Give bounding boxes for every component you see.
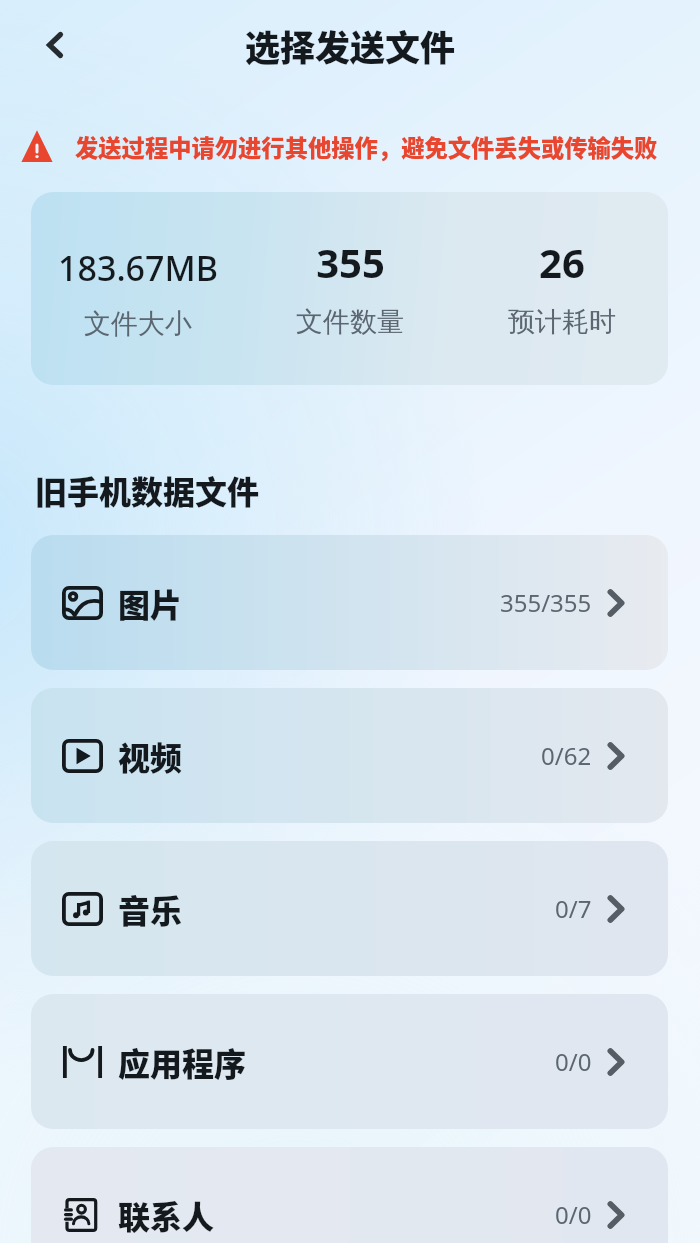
staticText: 音乐: [118, 886, 183, 932]
staticText: 0/0: [555, 1045, 592, 1078]
staticText: 选择发送文件: [245, 20, 456, 71]
staticText: 旧手机数据文件: [35, 467, 260, 513]
staticText: 0/7: [555, 892, 592, 925]
staticText: 视频: [118, 733, 183, 779]
button[interactable]: 应用程序: [31, 994, 668, 1129]
staticText: 26: [539, 235, 585, 289]
staticText: 0/0: [555, 1198, 592, 1231]
staticText: 应用程序: [118, 1039, 247, 1085]
button[interactable]: Back: [28, 18, 82, 72]
button[interactable]: 联系人: [31, 1147, 668, 1243]
staticText: 预计耗时: [508, 305, 616, 339]
staticText: 图片: [118, 580, 183, 626]
staticText: 0/62: [541, 739, 592, 772]
staticText: 355/355: [500, 586, 592, 619]
staticText: 183.67MB: [58, 245, 218, 291]
button[interactable]: 音乐: [31, 841, 668, 976]
staticText: 联系人: [118, 1192, 215, 1238]
staticText: 文件大小: [84, 307, 192, 341]
button[interactable]: 图片: [31, 535, 668, 670]
staticText: 发送过程中请勿进行其他操作，避免文件丢失或传输失败: [75, 130, 658, 164]
staticText: 355: [316, 235, 385, 289]
staticText: 文件数量: [296, 305, 404, 339]
button[interactable]: 视频: [31, 688, 668, 823]
